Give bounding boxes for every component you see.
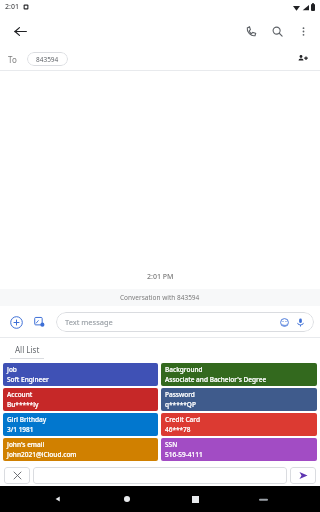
- staticText: Job: [7, 365, 17, 374]
- staticText: Associate and Bachelor's Degree: [165, 375, 267, 384]
- button[interactable]: Text message: [56, 312, 314, 332]
- button[interactable]: Call: [238, 18, 264, 44]
- staticText: Soft Engineer: [7, 375, 49, 384]
- button[interactable]: Gallery: [30, 312, 50, 332]
- staticText: 2:01 PM: [147, 272, 174, 282]
- button[interactable]: Job: [3, 363, 158, 386]
- staticText: 843594: [36, 55, 59, 64]
- staticText: 2:01: [5, 2, 19, 12]
- staticText: Password: [165, 390, 195, 399]
- button[interactable]: Add attachment: [6, 312, 26, 332]
- staticText: All List: [15, 344, 40, 355]
- button[interactable]: Add recipient: [294, 50, 312, 68]
- button[interactable]: Send: [290, 467, 316, 484]
- staticText: John's email: [7, 440, 45, 449]
- button[interactable]: Back: [47, 488, 69, 510]
- staticText: John2021@iCloud.com: [7, 450, 77, 459]
- button[interactable]: Hide keyboard: [252, 488, 274, 510]
- button[interactable]: [33, 467, 287, 484]
- button[interactable]: Back: [6, 17, 34, 45]
- staticText: To: [8, 54, 17, 65]
- button[interactable]: Recent apps: [184, 488, 206, 510]
- staticText: SSN: [165, 440, 178, 449]
- button[interactable]: Close: [4, 467, 30, 484]
- button[interactable]: Search: [264, 18, 290, 44]
- button[interactable]: Credit Card: [161, 413, 317, 436]
- staticText: Bu*****ly: [7, 400, 39, 409]
- staticText: Account: [7, 390, 33, 399]
- button[interactable]: Background: [161, 363, 317, 386]
- staticText: Text message: [65, 317, 113, 327]
- button[interactable]: More options: [290, 18, 316, 44]
- button[interactable]: Account: [3, 388, 158, 411]
- button[interactable]: John's email: [3, 438, 158, 461]
- button[interactable]: Girl Brithday: [3, 413, 158, 436]
- button[interactable]: 843594: [27, 52, 68, 66]
- button[interactable]: All List: [10, 341, 44, 359]
- staticText: Background: [165, 365, 203, 374]
- staticText: Girl Brithday: [7, 415, 47, 424]
- staticText: 46***78: [165, 425, 191, 434]
- staticText: 3/1 1981: [7, 425, 34, 434]
- staticText: 516-59-4111: [165, 450, 203, 459]
- button[interactable]: SSN: [161, 438, 317, 461]
- button[interactable]: Home: [116, 488, 138, 510]
- staticText: Credit Card: [165, 415, 200, 424]
- staticText: Conversation with 843594: [120, 293, 200, 302]
- button[interactable]: Password: [161, 388, 317, 411]
- staticText: q*****QP: [165, 400, 196, 409]
